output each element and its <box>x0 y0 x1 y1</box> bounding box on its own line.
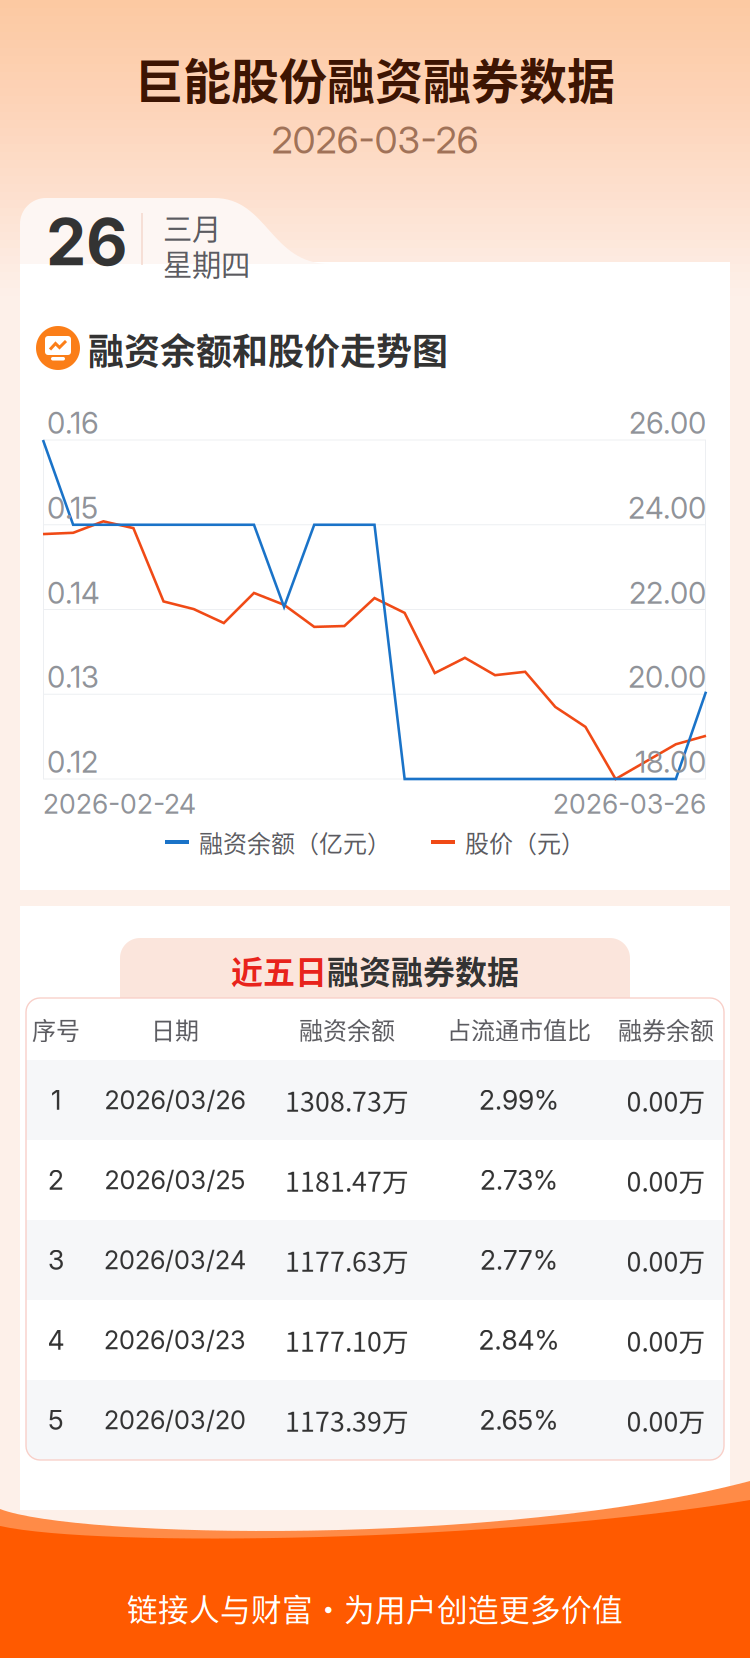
staticText: 三月 <box>163 206 221 248</box>
staticText: 2.77% <box>480 1244 558 1276</box>
staticText: 0.14 <box>47 575 100 611</box>
staticText: 22.00 <box>629 575 706 611</box>
staticText: 2026/03/23 <box>104 1325 246 1355</box>
staticText: 股价（元） <box>465 825 585 859</box>
staticText: 1173.39万 <box>285 1401 409 1439</box>
staticText: 0.13 <box>47 659 99 695</box>
staticText: 0.15 <box>47 490 98 526</box>
staticText: 星期四 <box>163 242 250 284</box>
staticText: 0.00万 <box>626 1081 705 1119</box>
staticText: 26.00 <box>629 405 706 441</box>
staticText: 序号 <box>32 1012 80 1046</box>
staticText: 1177.10万 <box>285 1321 409 1359</box>
staticText: 0.00万 <box>626 1161 705 1199</box>
staticText: 5 <box>48 1404 64 1436</box>
staticText: 24.00 <box>628 490 706 526</box>
staticText: 链接人与财富·为用户创造更多价值 <box>127 1586 623 1630</box>
staticText: 0.00万 <box>626 1241 705 1279</box>
staticText: 2.84% <box>478 1324 559 1356</box>
staticText: 0.00万 <box>626 1401 705 1439</box>
staticText: 2026/03/20 <box>104 1405 246 1435</box>
staticText: 近五日 <box>231 947 327 993</box>
staticText: 融资余额（亿元） <box>199 825 391 859</box>
staticText: 日期 <box>151 1012 199 1046</box>
staticText: 融券余额 <box>618 1012 714 1046</box>
staticText: 占流通市值比 <box>447 1012 591 1046</box>
staticText: 20.00 <box>628 659 706 695</box>
staticText: 巨能股份融资融券数据 <box>135 43 615 113</box>
staticText: 26 <box>46 203 128 281</box>
staticText: 1181.47万 <box>285 1161 409 1199</box>
staticText: 1 <box>51 1084 61 1116</box>
staticText: 0.00万 <box>626 1321 705 1359</box>
staticText: 2.73% <box>480 1164 558 1196</box>
staticText: 2026-02-24 <box>43 788 196 820</box>
staticText: 融资融券数据 <box>327 947 519 993</box>
staticText: 2026/03/24 <box>104 1245 246 1275</box>
staticText: 0.12 <box>47 744 98 780</box>
staticText: 2.65% <box>479 1404 558 1436</box>
staticText: 2.99% <box>479 1084 559 1116</box>
staticText: 融资余额 <box>299 1012 395 1046</box>
staticText: 2026/03/26 <box>104 1085 245 1115</box>
staticText: 2 <box>48 1164 64 1196</box>
staticText: 3 <box>48 1244 64 1276</box>
staticText: 18.00 <box>635 744 706 780</box>
staticText: 2026-03-26 <box>271 117 478 163</box>
staticText: 1308.73万 <box>285 1081 409 1119</box>
staticText: 融资余额和股价走势图 <box>88 323 448 375</box>
staticText: 2026-03-26 <box>553 788 706 820</box>
staticText: 0.16 <box>47 405 99 441</box>
staticText: 4 <box>47 1324 64 1356</box>
staticText: 1177.63万 <box>285 1241 409 1279</box>
staticText: 2026/03/25 <box>104 1165 245 1195</box>
